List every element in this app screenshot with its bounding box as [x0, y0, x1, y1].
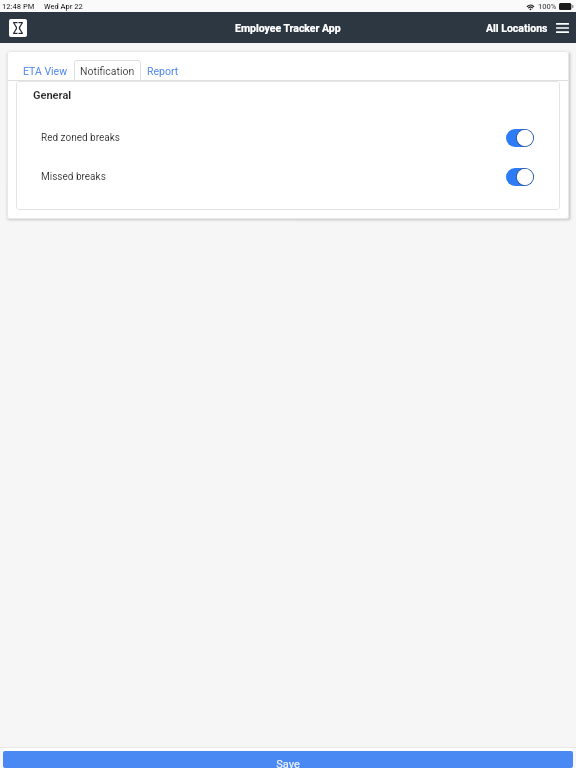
staticText: 12:48 PM [2, 2, 35, 11]
staticText: Wed Apr 22 [44, 2, 83, 11]
button[interactable]: Report [141, 61, 185, 81]
staticText: Save [276, 758, 300, 768]
button[interactable]: Save [3, 751, 573, 768]
button[interactable]: Red zoned breaks [16, 129, 560, 147]
button[interactable]: Toggle [506, 168, 534, 186]
button[interactable]: Toggle [506, 129, 534, 147]
staticText: Notification [80, 65, 135, 77]
staticText: Employee Tracker App [235, 22, 341, 34]
staticText: Red zoned breaks [41, 132, 120, 144]
button[interactable]: ETA View [17, 61, 74, 81]
staticText: ETA View [23, 65, 68, 77]
staticText: General [33, 89, 72, 102]
button[interactable]: Notification [74, 60, 141, 81]
button[interactable]: Missed breaks [16, 168, 560, 186]
staticText: Missed breaks [41, 171, 106, 183]
staticText: All Locations [486, 22, 548, 34]
staticText: Report [147, 65, 179, 77]
button[interactable]: App logo [9, 19, 27, 37]
staticText: 100% [538, 2, 557, 11]
button[interactable]: All Locations [486, 22, 576, 34]
